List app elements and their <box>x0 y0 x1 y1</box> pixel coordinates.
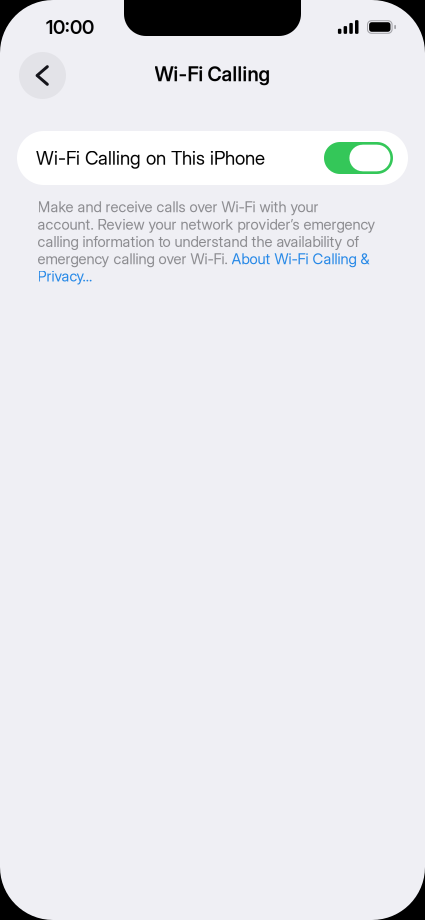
staticText: Wi-Fi Calling on This iPhone <box>36 147 265 169</box>
button[interactable]: Back <box>19 52 66 99</box>
button[interactable]: Wi-Fi Calling on This iPhone <box>17 131 408 185</box>
staticText: 10:00 <box>46 15 94 39</box>
staticText: Make and receive calls over Wi-Fi with y… <box>37 198 375 285</box>
staticText: Wi-Fi Calling <box>154 62 270 86</box>
